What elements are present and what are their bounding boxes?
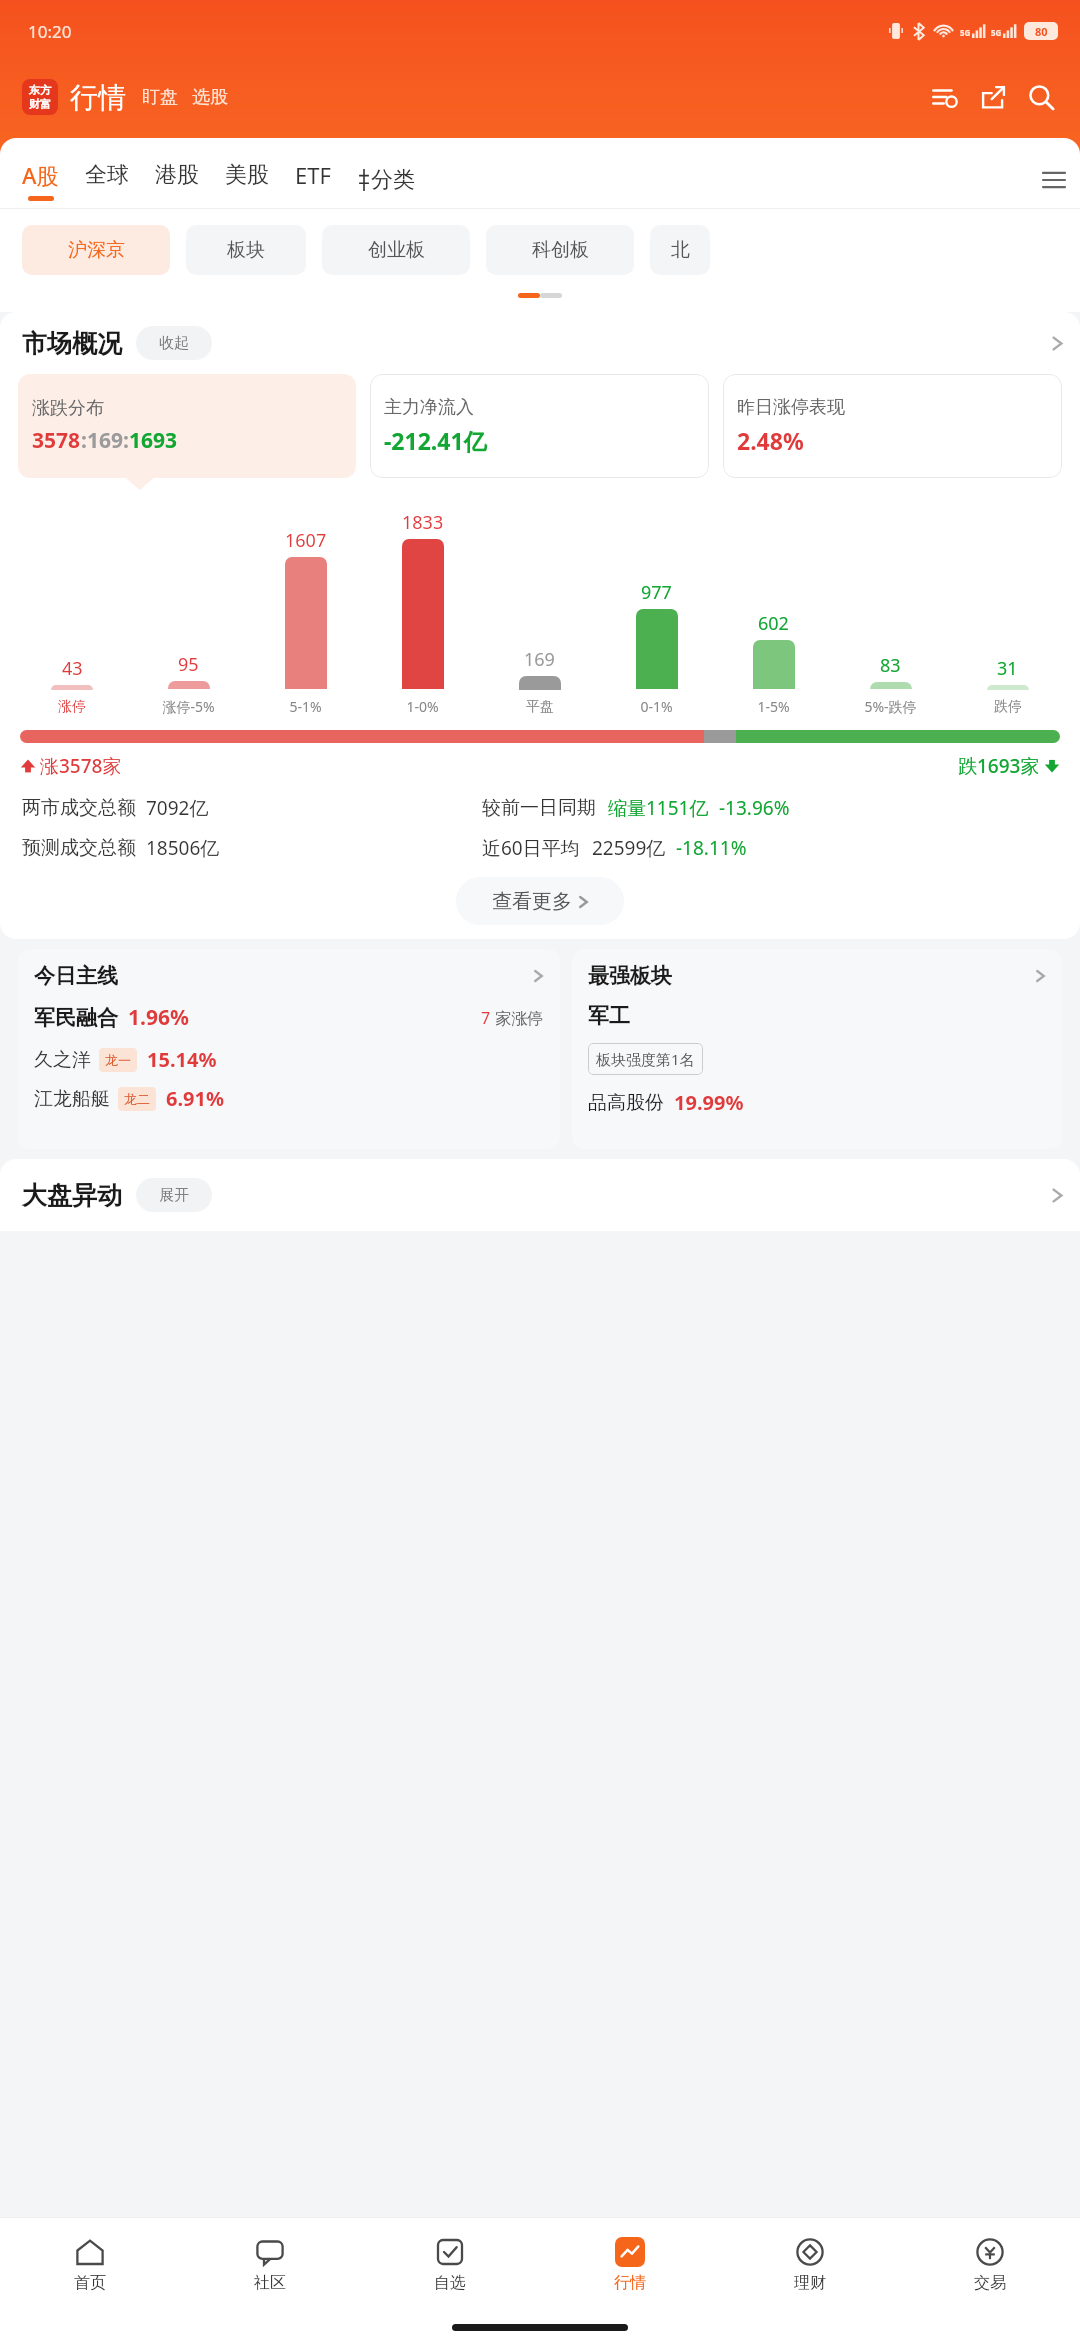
staticText: 涨3578家 bbox=[40, 753, 122, 779]
staticText: 军工 bbox=[588, 1003, 630, 1029]
staticText: 市场概况 bbox=[22, 328, 122, 359]
staticText: 美股 bbox=[225, 161, 269, 189]
staticText: 板块 bbox=[227, 238, 265, 262]
button[interactable]: 板块 bbox=[186, 225, 306, 275]
staticText: 家涨停 bbox=[491, 1007, 544, 1029]
staticText: 平盘 bbox=[526, 698, 554, 716]
button[interactable]: 涨跌分布 bbox=[18, 374, 356, 478]
staticText: 10:20 bbox=[28, 20, 72, 43]
staticText: 今日主线 bbox=[34, 963, 118, 989]
staticText: 分类 bbox=[371, 166, 415, 194]
button[interactable]: 市场概况 bbox=[22, 312, 1064, 374]
staticText: 1833 bbox=[402, 510, 444, 535]
button[interactable]: 主力净流入 bbox=[370, 374, 709, 478]
button[interactable]: 创业板 bbox=[322, 225, 470, 275]
staticText: -212.41亿 bbox=[384, 425, 487, 456]
staticText: 3578 bbox=[32, 426, 81, 455]
staticText: 5G bbox=[960, 27, 971, 38]
staticText: 大盘异动 bbox=[22, 1180, 122, 1211]
button[interactable]: Search bbox=[1024, 80, 1058, 114]
button[interactable]: A股 bbox=[22, 160, 85, 201]
staticText: 交易 bbox=[974, 2273, 1006, 2293]
staticText: 两市成交总额 bbox=[22, 796, 136, 820]
button[interactable]: ETF bbox=[295, 160, 357, 201]
staticText: 涨停-5% bbox=[162, 697, 215, 716]
staticText: 1.96% bbox=[128, 1003, 189, 1032]
staticText: 跌1693家 bbox=[958, 753, 1040, 779]
button[interactable]: 今日主线 bbox=[18, 949, 560, 1149]
button[interactable]: 理财 bbox=[720, 2218, 900, 2310]
staticText: :169: bbox=[81, 426, 129, 455]
staticText: 龙二 bbox=[124, 1091, 150, 1107]
staticText: 北 bbox=[671, 238, 690, 262]
staticText: 5-1% bbox=[289, 697, 322, 716]
staticText: -13.96% bbox=[719, 795, 790, 821]
staticText: 理财 bbox=[794, 2273, 826, 2293]
button[interactable]: 首页 bbox=[0, 2218, 180, 2310]
button[interactable]: 行情 bbox=[540, 2218, 720, 2310]
staticText: 18506亿 bbox=[146, 835, 220, 861]
staticText: 2.48% bbox=[737, 425, 804, 456]
staticText: 板块强度第1名 bbox=[596, 1049, 695, 1069]
button[interactable]: 交易 bbox=[900, 2218, 1080, 2310]
button[interactable]: 行情 bbox=[70, 80, 126, 115]
button[interactable]: 分类 bbox=[357, 166, 425, 194]
staticText: 科创板 bbox=[532, 238, 589, 262]
staticText: 602 bbox=[758, 611, 789, 636]
button[interactable]: 最强板块 bbox=[572, 949, 1062, 1149]
button[interactable]: 选股 bbox=[192, 86, 228, 109]
staticText: 95 bbox=[178, 652, 199, 677]
staticText: 昨日涨停表现 bbox=[737, 396, 845, 419]
button[interactable]: Filter settings bbox=[928, 80, 962, 114]
staticText: 7092亿 bbox=[146, 795, 209, 821]
button[interactable]: 自选 bbox=[360, 2218, 540, 2310]
staticText: 缩量1151亿 bbox=[608, 795, 709, 821]
staticText: 涨跌分布 bbox=[32, 397, 104, 420]
staticText: 军民融合 bbox=[34, 1005, 118, 1031]
staticText: -18.11% bbox=[676, 835, 747, 861]
staticText: 沪深京 bbox=[68, 238, 125, 262]
staticText: 1-0% bbox=[406, 697, 439, 716]
staticText: 977 bbox=[641, 580, 672, 605]
staticText: 19.99% bbox=[674, 1089, 744, 1116]
staticText: 较前一日同期 bbox=[482, 796, 596, 820]
staticText: 港股 bbox=[155, 161, 199, 189]
staticText: 东方 bbox=[29, 83, 51, 97]
staticText: A股 bbox=[22, 160, 59, 190]
button[interactable]: 北 bbox=[650, 225, 710, 275]
staticText: 全球 bbox=[85, 161, 129, 189]
staticText: 首页 bbox=[74, 2273, 106, 2293]
staticText: 6.91% bbox=[166, 1085, 224, 1112]
staticText: 久之洋 bbox=[34, 1048, 91, 1072]
staticText: 5G bbox=[991, 27, 1002, 38]
button[interactable]: 昨日涨停表现 bbox=[723, 374, 1062, 478]
staticText: 主力净流入 bbox=[384, 396, 474, 419]
button[interactable]: 美股 bbox=[225, 161, 295, 200]
staticText: 查看更多 bbox=[492, 889, 572, 914]
button[interactable]: 科创板 bbox=[486, 225, 634, 275]
staticText: 22599亿 bbox=[592, 835, 666, 861]
staticText: 展开 bbox=[159, 1186, 189, 1205]
staticText: 5%-跌停 bbox=[864, 697, 917, 716]
button[interactable]: Share bbox=[976, 80, 1010, 114]
staticText: 创业板 bbox=[368, 238, 425, 262]
button[interactable]: Menu bbox=[1034, 160, 1074, 200]
staticText: 品高股份 bbox=[588, 1091, 664, 1115]
button[interactable]: 盯盘 bbox=[142, 86, 178, 109]
button[interactable]: 查看更多 bbox=[456, 877, 624, 925]
button[interactable]: 社区 bbox=[180, 2218, 360, 2310]
button[interactable]: 港股 bbox=[155, 161, 225, 200]
staticText: 31 bbox=[997, 656, 1018, 681]
staticText: 1693 bbox=[129, 426, 178, 455]
staticText: 80 bbox=[1035, 24, 1048, 39]
button[interactable]: 沪深京 bbox=[22, 225, 170, 275]
staticText: 龙一 bbox=[105, 1052, 131, 1068]
staticText: 83 bbox=[880, 653, 901, 678]
staticText: 预测成交总额 bbox=[22, 836, 136, 860]
button[interactable]: 全球 bbox=[85, 161, 155, 200]
staticText: 最强板块 bbox=[588, 963, 672, 989]
staticText: 行情 bbox=[614, 2273, 646, 2293]
staticText: 近60日平均 bbox=[482, 835, 580, 861]
button[interactable]: 大盘异动 bbox=[0, 1159, 1080, 1231]
staticText: 涨停 bbox=[58, 698, 86, 716]
